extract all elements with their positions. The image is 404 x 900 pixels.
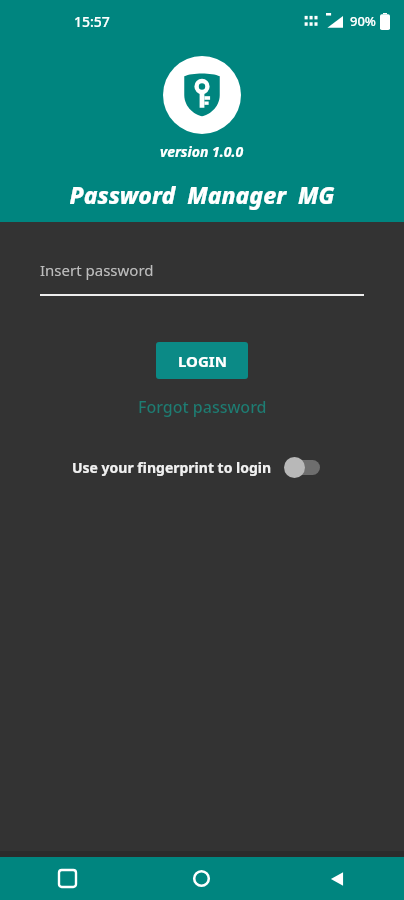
button[interactable]: Use your fingerprint to login toggle xyxy=(284,456,322,478)
staticText: Forgot password xyxy=(138,396,267,418)
staticText: Password Manager MG xyxy=(69,179,335,210)
button[interactable]: Insert password xyxy=(40,260,364,296)
staticText: 15:57 xyxy=(74,12,110,31)
button[interactable]: Forgot password xyxy=(128,392,277,422)
staticText: Insert password xyxy=(40,260,154,280)
button[interactable]: Use your fingerprint to login xyxy=(0,456,404,478)
staticText: version 1.0.0 xyxy=(160,142,244,161)
button[interactable]: Back xyxy=(269,857,404,900)
staticText: Use your fingerprint to login xyxy=(72,458,272,477)
button[interactable]: LOGIN xyxy=(156,342,248,379)
button[interactable]: Home xyxy=(134,857,269,900)
staticText: LOGIN xyxy=(178,351,227,371)
staticText: 90% xyxy=(350,12,376,30)
button[interactable]: Recent apps xyxy=(0,857,134,900)
